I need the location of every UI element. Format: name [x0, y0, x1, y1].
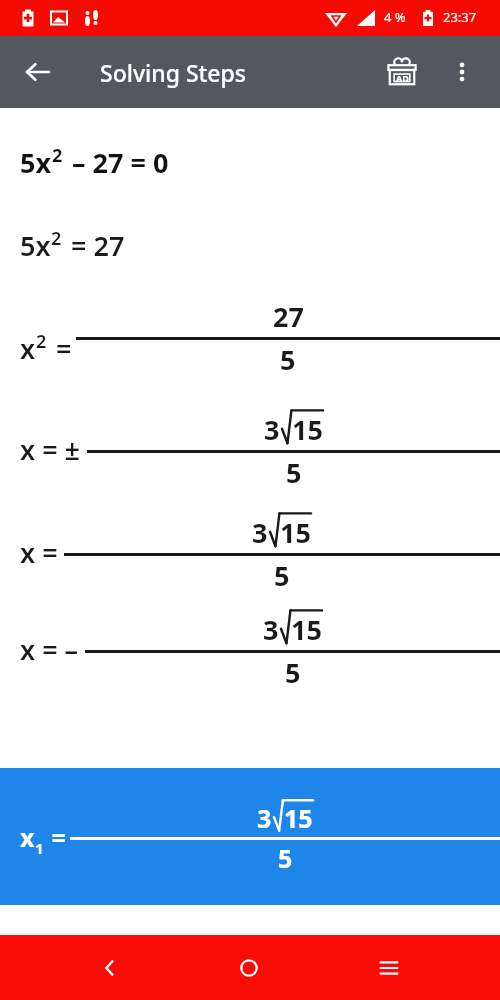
staticText: Solving Steps [100, 57, 247, 88]
staticText: = 27 [64, 227, 125, 264]
staticText: 3 [264, 411, 280, 448]
staticText: 5x [20, 227, 51, 264]
staticText: 5 [278, 841, 293, 875]
staticText: = [49, 330, 72, 367]
staticText: x = ± [20, 431, 81, 468]
staticText: 2 [51, 226, 62, 251]
staticText: AD [396, 72, 409, 84]
staticText: 15 [280, 514, 311, 551]
staticText: 27 [273, 298, 304, 335]
staticText: 2 [36, 329, 47, 354]
staticText: x [20, 330, 36, 367]
staticText: 15 [292, 411, 323, 448]
staticText: x = – [20, 631, 79, 668]
button[interactable]: Watch ad for reward [378, 48, 426, 96]
staticText: 3 [263, 611, 279, 648]
button[interactable]: Back [81, 939, 139, 997]
staticText: 5 [280, 341, 296, 378]
staticText: 3 [252, 514, 268, 551]
button[interactable]: Back [12, 46, 64, 98]
staticText: 5x [20, 144, 52, 181]
button[interactable]: Recent apps [360, 939, 418, 997]
staticText: 15 [291, 611, 322, 648]
staticText: 5 [285, 654, 301, 691]
staticText: 5 [274, 557, 290, 594]
staticText: 1 [35, 838, 44, 858]
staticText: = [45, 820, 66, 854]
button[interactable]: Home [220, 939, 278, 997]
staticText: x [20, 820, 35, 854]
staticText: 4 % [384, 8, 406, 26]
staticText: 23:37 [443, 8, 477, 26]
button[interactable]: x [0, 768, 500, 905]
staticText: 3 [257, 801, 272, 835]
staticText: 2 [52, 143, 63, 168]
button[interactable]: More options [440, 50, 484, 94]
staticText: 15 [284, 801, 313, 835]
staticText: – 27 = 0 [65, 144, 169, 181]
staticText: x = [20, 534, 58, 571]
staticText: 5 [286, 454, 302, 491]
